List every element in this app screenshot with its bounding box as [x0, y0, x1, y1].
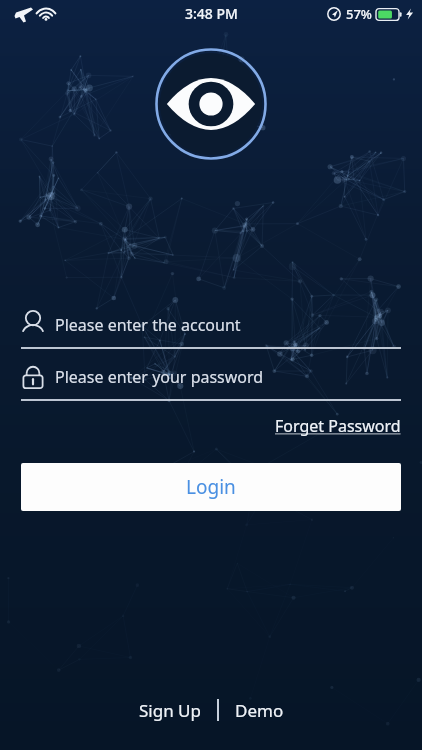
- button[interactable]: Forget Password: [275, 411, 401, 441]
- button[interactable]: Demo: [219, 691, 300, 730]
- staticText: 57%: [346, 5, 372, 23]
- staticText: Please enter the account: [55, 314, 241, 336]
- button[interactable]: Please enter your password: [21, 355, 401, 401]
- button[interactable]: Sign Up: [123, 691, 217, 730]
- staticText: Sign Up: [139, 699, 201, 722]
- staticText: Demo: [235, 699, 284, 722]
- button[interactable]: Login: [21, 463, 401, 511]
- button[interactable]: Please enter the account: [21, 303, 401, 349]
- other: App logo: [155, 48, 267, 160]
- staticText: Login: [186, 474, 236, 500]
- staticText: 3:48 PM: [185, 4, 238, 23]
- staticText: Please enter your password: [55, 366, 264, 388]
- staticText: Forget Password: [275, 415, 401, 437]
